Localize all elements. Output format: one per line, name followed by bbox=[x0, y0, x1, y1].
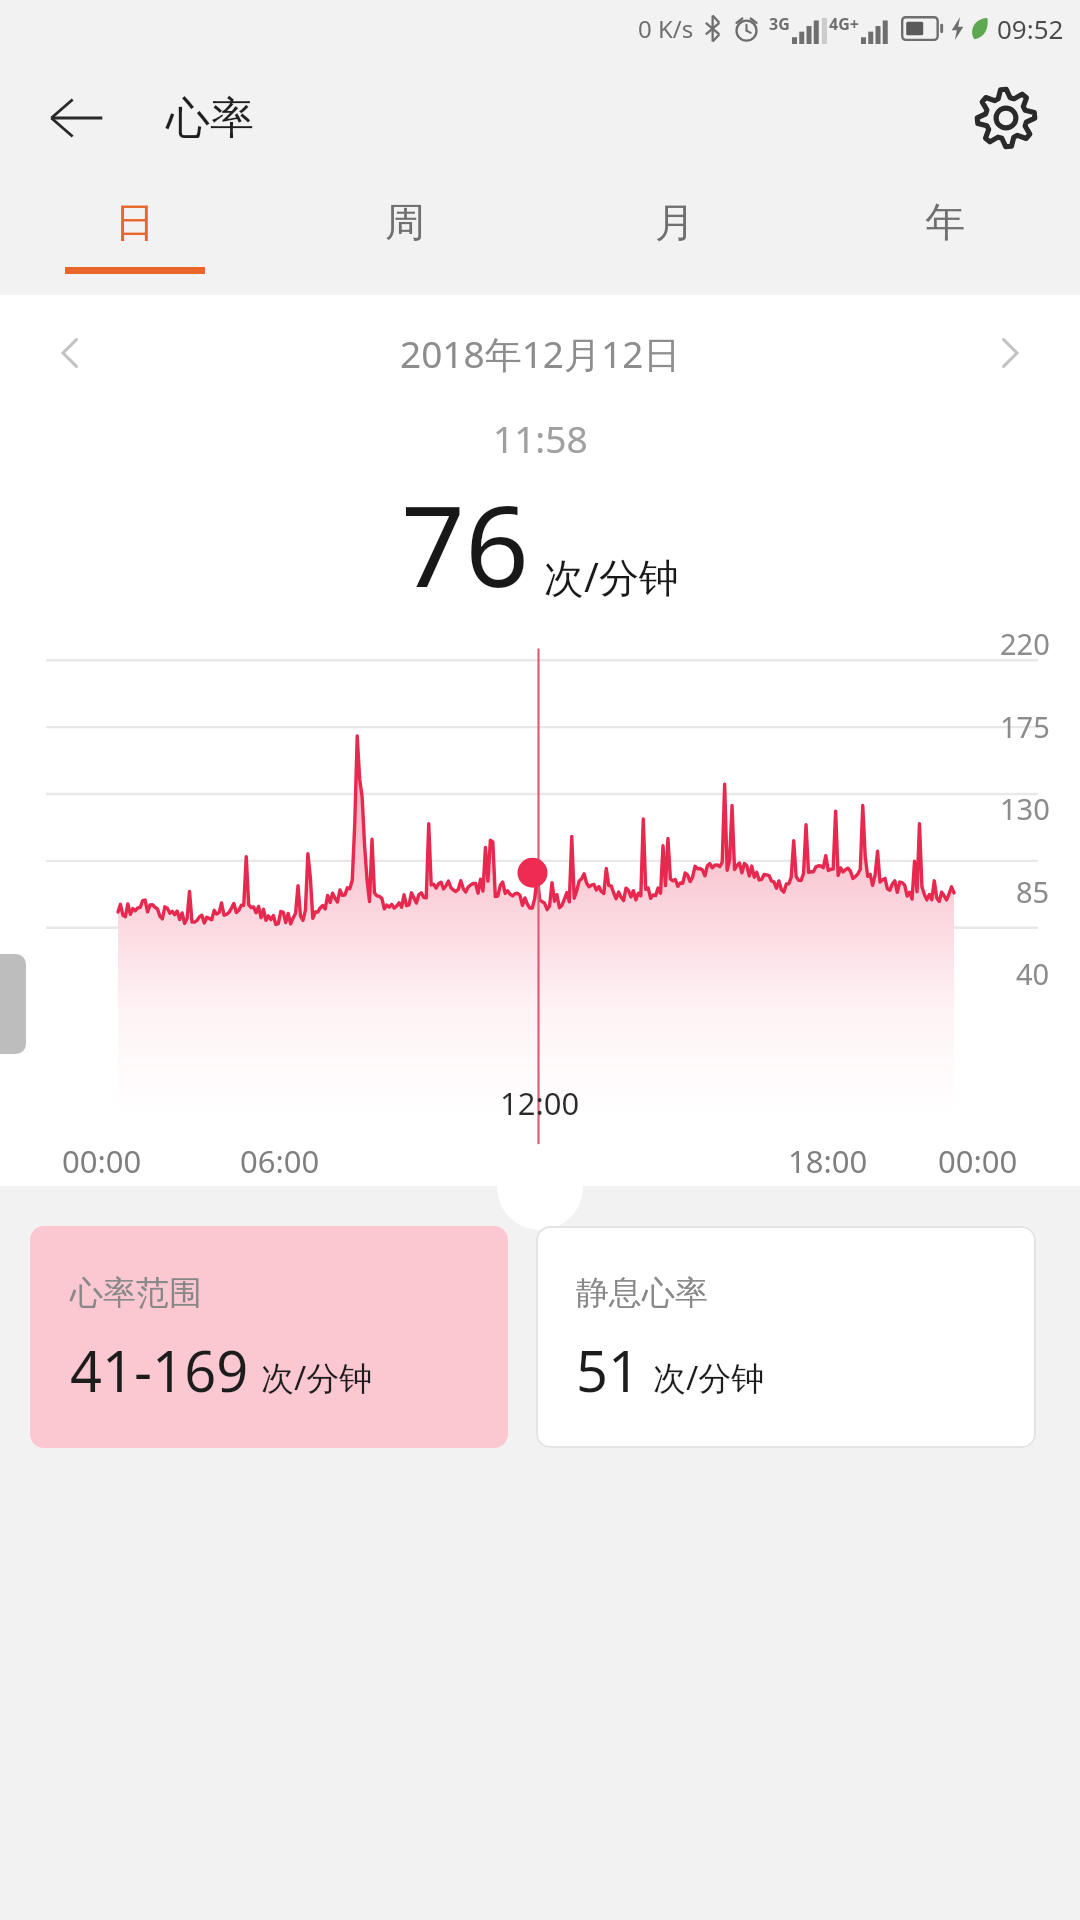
staticText: 51 bbox=[576, 1332, 641, 1408]
button[interactable]: Settings bbox=[964, 76, 1048, 160]
staticText: 11:58 bbox=[493, 413, 588, 463]
staticText: 4G+ bbox=[829, 13, 859, 35]
staticText: 心率 bbox=[166, 91, 254, 146]
staticText: 40 bbox=[1016, 954, 1050, 993]
staticText: 09:52 bbox=[997, 11, 1064, 46]
staticText: 220 bbox=[1000, 624, 1050, 663]
staticText: 心率范围 bbox=[70, 1272, 202, 1314]
staticText: 12:00 bbox=[500, 1082, 580, 1124]
staticText: 周 bbox=[385, 197, 425, 247]
staticText: 静息心率 bbox=[576, 1272, 708, 1314]
staticText: 3G bbox=[769, 13, 790, 35]
button[interactable]: Side handle bbox=[0, 954, 26, 1054]
button[interactable]: 日 bbox=[0, 179, 270, 295]
button[interactable]: Previous day bbox=[34, 317, 106, 389]
button[interactable]: 月 bbox=[540, 179, 810, 295]
staticText: 130 bbox=[1000, 789, 1050, 828]
button[interactable]: Next day bbox=[974, 317, 1046, 389]
button[interactable]: 静息心率 bbox=[536, 1226, 1036, 1448]
staticText: 次/分钟 bbox=[653, 1355, 765, 1400]
staticText: 41-169 bbox=[70, 1332, 249, 1408]
button[interactable]: 周 bbox=[270, 179, 540, 295]
staticText: 175 bbox=[1000, 707, 1050, 746]
staticText: 0 K/s bbox=[638, 12, 694, 45]
button[interactable]: 年 bbox=[810, 179, 1080, 295]
button[interactable]: 心率范围 bbox=[30, 1226, 508, 1448]
staticText: 2018年12月12日 bbox=[400, 328, 681, 379]
staticText: 00:00 bbox=[938, 1140, 1018, 1182]
staticText: 76 bbox=[401, 467, 530, 620]
button[interactable]: Scroll handle bbox=[497, 1144, 583, 1230]
staticText: 年 bbox=[925, 197, 965, 247]
staticText: 18:00 bbox=[788, 1140, 868, 1182]
staticText: 00:00 bbox=[62, 1140, 142, 1182]
staticText: 85 bbox=[1016, 872, 1050, 911]
staticText: 06:00 bbox=[240, 1140, 320, 1182]
staticText: 月 bbox=[655, 197, 695, 247]
button[interactable]: Back bbox=[38, 80, 114, 156]
staticText: 次/分钟 bbox=[261, 1355, 373, 1400]
staticText: 日 bbox=[115, 197, 155, 247]
staticText: 次/分钟 bbox=[544, 549, 679, 604]
